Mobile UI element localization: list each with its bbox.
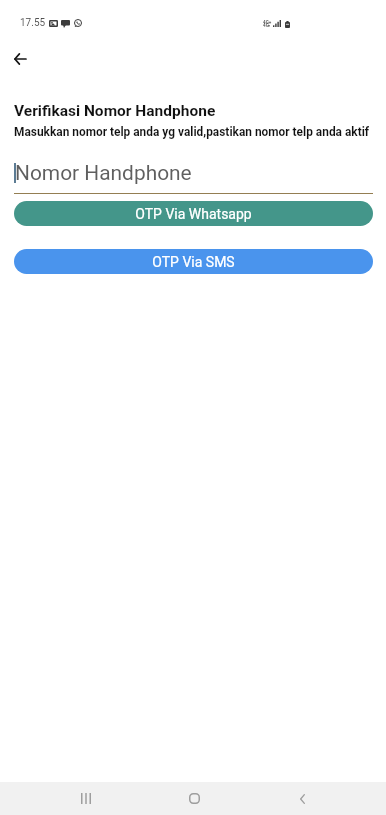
staticText: OTP Via Whatsapp [135, 206, 252, 222]
staticText: Masukkan nomor telp anda yg valid,pastik… [14, 125, 370, 139]
staticText: Verifikasi Nomor Handphone [14, 102, 216, 120]
staticText: 4G [263, 23, 269, 28]
staticText: Nomor Handphone [15, 161, 192, 185]
button[interactable]: Nomor Handphone [14, 157, 373, 194]
staticText: OTP Via SMS [152, 254, 235, 270]
button[interactable]: OTP Via Whatsapp [14, 201, 373, 226]
button[interactable]: Home [170, 782, 218, 815]
button[interactable]: Back [278, 782, 326, 815]
button[interactable]: Recent apps [62, 782, 110, 815]
button[interactable]: Back [6, 45, 34, 73]
staticText: 17.55 [20, 17, 46, 29]
button[interactable]: OTP Via SMS [14, 249, 373, 274]
staticText: 4G+ [263, 20, 272, 25]
